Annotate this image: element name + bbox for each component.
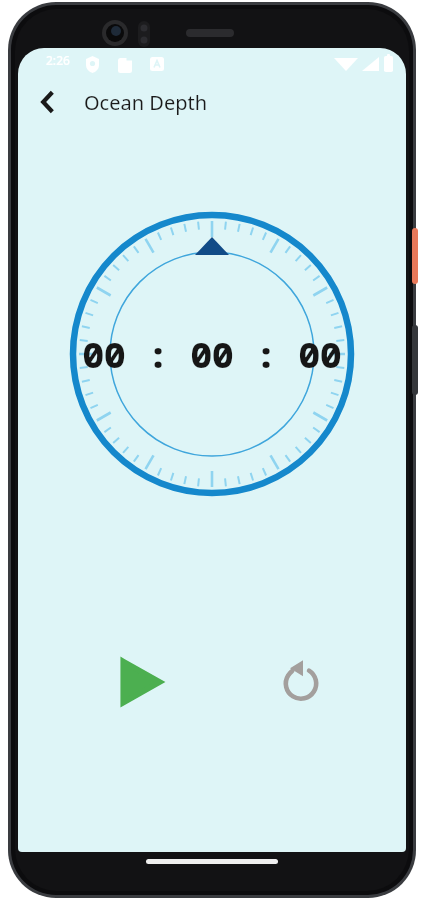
button[interactable]: Start [106,648,174,716]
button[interactable]: Back [28,82,68,122]
staticText: 2:26 [46,52,70,68]
button[interactable]: Reset [267,648,335,716]
staticText: Ocean Depth [84,89,208,116]
staticText: 00 : 00 : 00 [82,330,342,379]
